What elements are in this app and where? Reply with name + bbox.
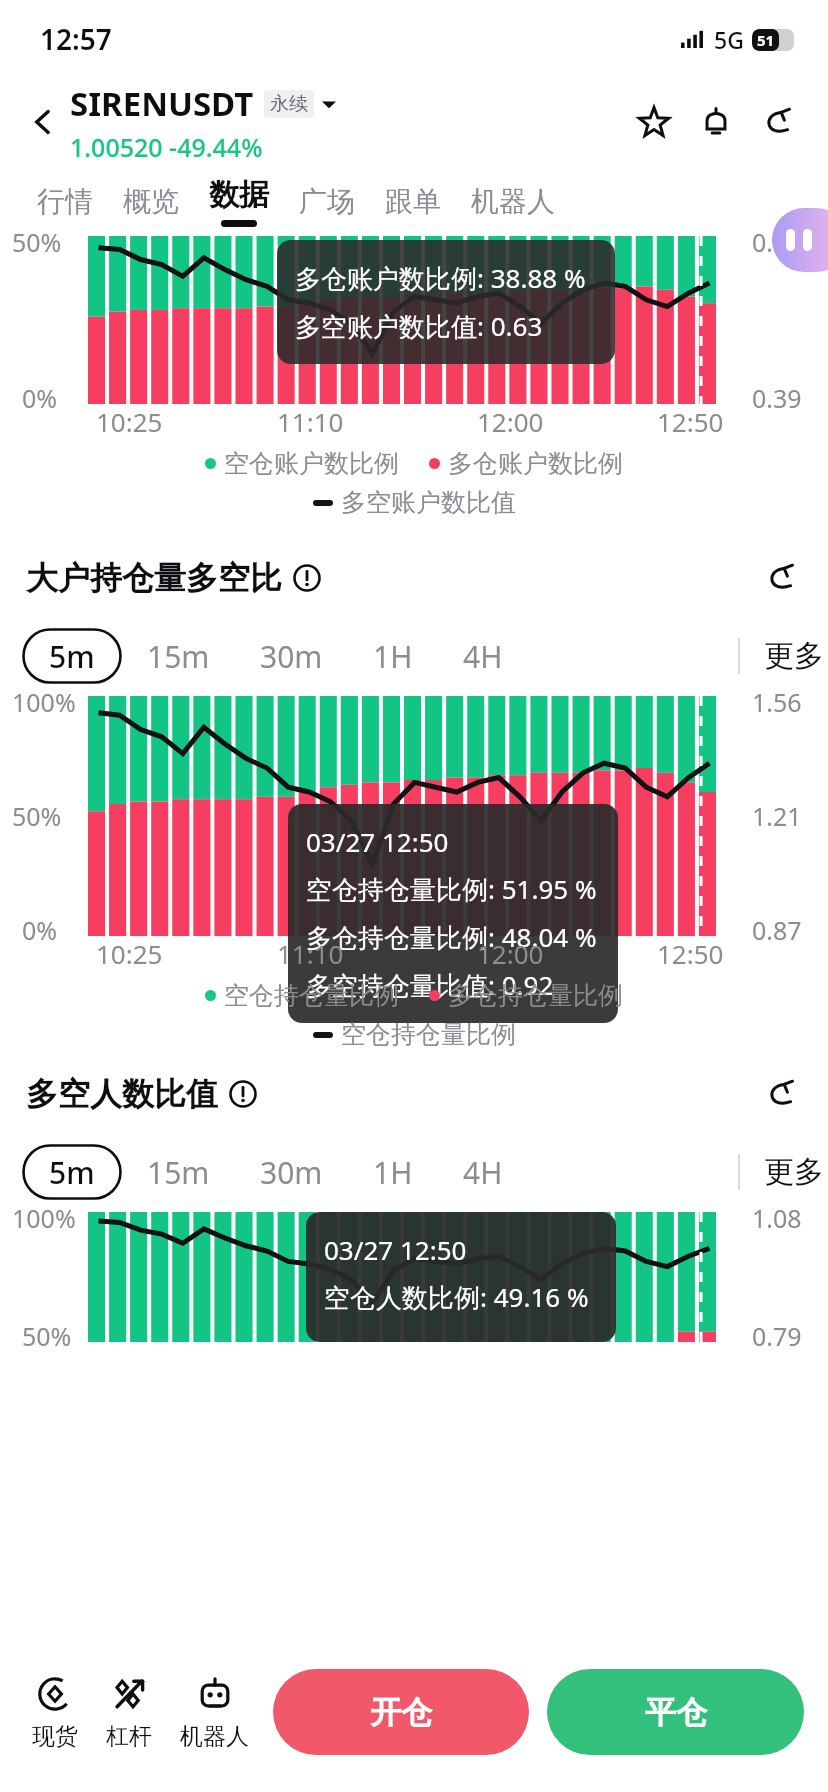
staticText: 1.08	[752, 1201, 802, 1235]
staticText: 4H	[463, 1152, 503, 1193]
staticText: 0%	[22, 913, 58, 947]
button[interactable]: 开仓	[273, 1669, 529, 1755]
staticText: 空仓人数比例: 49.16 %	[324, 1279, 589, 1315]
button[interactable]: 1H	[348, 1144, 438, 1200]
button[interactable]: Info	[226, 1077, 260, 1111]
button[interactable]: 5m	[22, 1144, 122, 1200]
staticText: 0.39	[752, 381, 802, 415]
staticText: 空仓持仓量比例: 51.95 %	[306, 871, 597, 907]
button[interactable]: 4H	[438, 1144, 528, 1200]
staticText: 12:00	[477, 404, 544, 439]
button[interactable]: 更多	[740, 1144, 828, 1200]
staticText: 多仓账户数比例: 38.88 %	[295, 260, 586, 296]
staticText: 10:25	[96, 936, 163, 971]
staticText: 跟单	[385, 184, 441, 219]
staticText: 多空持仓量比值: 0.92	[306, 967, 554, 1003]
staticText: 更多	[764, 1153, 824, 1191]
staticText: 多仓账户数比例	[448, 448, 623, 479]
button[interactable]: 1H	[348, 628, 438, 684]
button[interactable]: Favorite	[630, 98, 678, 146]
staticText: 多仓持仓量比例	[448, 980, 623, 1011]
button[interactable]: 15m	[122, 1144, 235, 1200]
button[interactable]: 5m	[22, 628, 122, 684]
staticText: 0.87	[752, 913, 802, 947]
staticText: 51	[757, 30, 775, 50]
button[interactable]: Spot	[18, 1674, 92, 1751]
staticText: 机器人	[471, 184, 555, 219]
staticText: 空仓账户数比例	[224, 448, 399, 479]
button[interactable]: Info	[290, 561, 324, 595]
button[interactable]: 跟单	[370, 166, 456, 236]
staticText: 03/27 12:50	[324, 1232, 467, 1267]
staticText: SIRENUSDT	[70, 81, 254, 126]
staticText: 50%	[22, 1319, 72, 1353]
staticText: 永续	[270, 92, 308, 116]
staticText: 10:25	[96, 404, 163, 439]
staticText: 更多	[764, 637, 824, 675]
staticText: 30m	[260, 636, 323, 677]
button[interactable]: 30m	[235, 628, 348, 684]
button[interactable]: 广场	[284, 166, 370, 236]
staticText: 平仓	[645, 1693, 707, 1732]
staticText: 行情	[37, 184, 93, 219]
staticText: 多空账户数比值: 0.63	[295, 308, 543, 344]
staticText: 多空人数比值	[26, 1074, 218, 1114]
staticText: 1.00520 -49.44%	[70, 130, 263, 164]
staticText: 数据	[209, 176, 269, 214]
staticText: 15m	[147, 636, 210, 677]
staticText: 1H	[373, 1152, 413, 1193]
staticText: 30m	[260, 1152, 323, 1193]
staticText: 11:10	[277, 404, 344, 439]
button[interactable]: 15m	[122, 628, 235, 684]
staticText: 50%	[12, 225, 62, 259]
button[interactable]: Expand chart	[758, 555, 804, 601]
button[interactable]: 概览	[108, 166, 194, 236]
button[interactable]: Bot	[166, 1674, 263, 1751]
staticText: 空仓持仓量比例	[341, 1019, 516, 1050]
staticText: 5m	[49, 1152, 95, 1193]
staticText: 5G	[714, 24, 744, 55]
staticText: 50%	[12, 799, 62, 833]
staticText: 12:50	[657, 936, 724, 971]
staticText: 12:00	[477, 936, 544, 971]
staticText: 0%	[22, 381, 58, 415]
staticText: 大户持仓量多空比	[26, 558, 282, 598]
staticText: 15m	[147, 1152, 210, 1193]
button[interactable]: 30m	[235, 1144, 348, 1200]
staticText: 0.79	[752, 1319, 802, 1353]
staticText: 1.21	[752, 799, 802, 833]
staticText: 03/27 12:50	[306, 824, 449, 859]
staticText: 1H	[373, 636, 413, 677]
staticText: 11:10	[277, 936, 344, 971]
staticText: 12:57	[40, 20, 112, 58]
button[interactable]: Assistant	[772, 208, 828, 272]
button[interactable]: 数据	[194, 166, 284, 236]
button[interactable]: Back	[20, 99, 66, 145]
button[interactable]: Margin	[92, 1674, 166, 1751]
staticText: 5m	[49, 636, 95, 677]
button[interactable]: 机器人	[456, 166, 570, 236]
staticText: 100%	[12, 1201, 76, 1235]
button[interactable]: 4H	[438, 628, 528, 684]
staticText: 100%	[12, 685, 76, 719]
button[interactable]: 更多	[740, 628, 828, 684]
staticText: 空仓持仓量比例	[224, 980, 399, 1011]
staticText: 概览	[123, 184, 179, 219]
button[interactable]: 行情	[22, 166, 108, 236]
staticText: 机器人	[180, 1722, 249, 1751]
staticText: 1.56	[752, 685, 802, 719]
staticText: 12:50	[657, 404, 724, 439]
button[interactable]: Expand chart	[758, 1071, 804, 1117]
staticText: 4H	[463, 636, 503, 677]
staticText: 现货	[32, 1722, 78, 1751]
button[interactable]: Alerts	[692, 98, 740, 146]
button[interactable]: Share	[754, 98, 802, 146]
staticText: 广场	[299, 184, 355, 219]
button[interactable]: 平仓	[547, 1669, 804, 1755]
staticText: 0.52	[752, 225, 802, 259]
staticText: 多仓持仓量比例: 48.04 %	[306, 919, 597, 955]
staticText: 开仓	[370, 1693, 432, 1732]
staticText: 多空账户数比值	[341, 487, 516, 518]
staticText: 杠杆	[106, 1722, 152, 1751]
